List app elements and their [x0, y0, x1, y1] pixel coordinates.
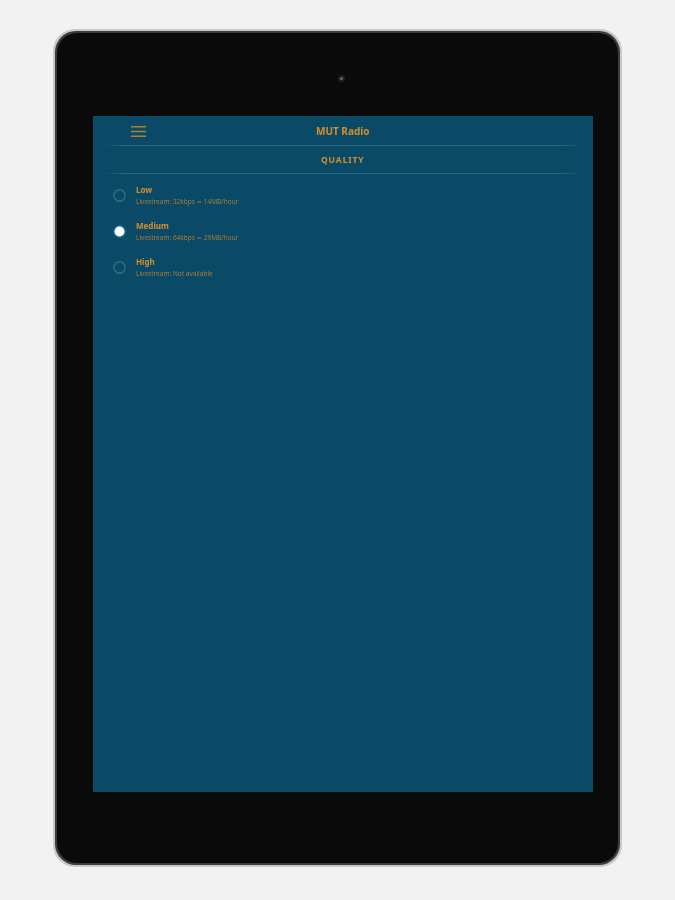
staticText: QUALITY [321, 154, 365, 166]
button[interactable]: Low [93, 177, 593, 213]
staticText: High [136, 256, 155, 267]
staticText: Medium [136, 220, 169, 231]
button[interactable]: Open navigation menu [126, 119, 150, 143]
staticText: Livestream: Not available [136, 269, 213, 278]
button[interactable]: Medium [93, 213, 593, 249]
staticText: Low [136, 184, 153, 195]
staticText: MUT Radio [316, 124, 370, 138]
staticText: Livestream: 32kbps ≈ 14MB/hour [136, 197, 239, 206]
staticText: Livestream: 64kbps ≈ 29MB/hour [136, 233, 239, 242]
button[interactable]: High [93, 249, 593, 285]
